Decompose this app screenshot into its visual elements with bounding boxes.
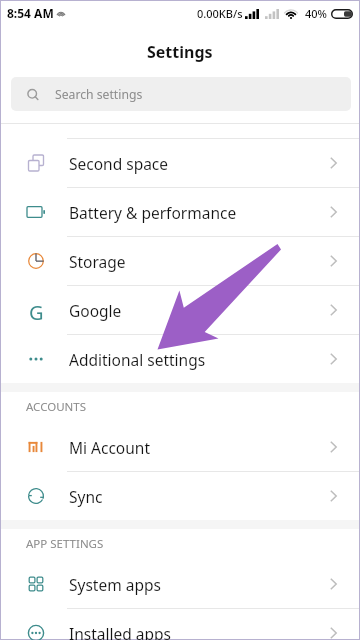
- staticText: APP SETTINGS: [26, 536, 104, 552]
- button[interactable]: Storage: [1, 237, 359, 285]
- button[interactable]: System apps: [1, 560, 359, 608]
- other: Pointer arrow: [1, 1, 359, 639]
- staticText: ACCOUNTS: [26, 399, 87, 415]
- button[interactable]: Second space: [1, 139, 359, 187]
- staticText: Settings: [147, 41, 213, 63]
- button[interactable]: Battery & performance: [1, 188, 359, 236]
- staticText: Installed apps: [69, 623, 172, 640]
- staticText: G: [29, 299, 44, 321]
- staticText: Storage: [69, 251, 126, 272]
- staticText: Search settings: [55, 86, 143, 103]
- staticText: Second space: [69, 153, 169, 174]
- staticText: Battery & performance: [69, 202, 237, 223]
- button[interactable]: Mi Account: [1, 423, 359, 471]
- staticText: System apps: [69, 574, 161, 595]
- button[interactable]: Installed apps: [1, 609, 359, 640]
- staticText: 0.00KB/s: [197, 6, 243, 21]
- button[interactable]: Additional settings: [1, 335, 359, 383]
- staticText: 40%: [305, 6, 327, 21]
- staticText: Mi Account: [69, 437, 151, 458]
- button[interactable]: G: [1, 286, 359, 334]
- button[interactable]: Search settings: [11, 77, 351, 111]
- staticText: Google: [69, 300, 122, 321]
- staticText: 8:54 AM: [7, 5, 54, 21]
- staticText: Sync: [69, 486, 103, 507]
- staticText: Additional settings: [69, 349, 206, 370]
- button[interactable]: Sync: [1, 472, 359, 520]
